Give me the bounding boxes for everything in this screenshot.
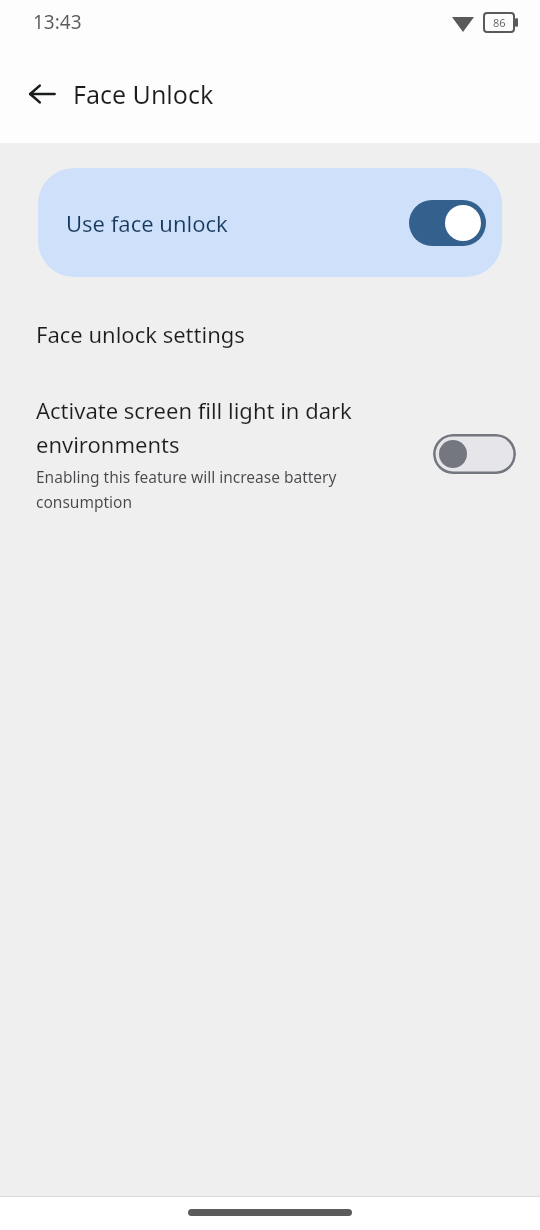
button[interactable]: Back bbox=[18, 70, 66, 118]
staticText: Face Unlock bbox=[73, 77, 214, 111]
button[interactable]: Activate screen fill light in dark envir… bbox=[0, 395, 540, 512]
staticText: 86 bbox=[493, 15, 506, 30]
staticText: Face unlock settings bbox=[36, 319, 245, 349]
staticText: Use face unlock bbox=[66, 208, 409, 238]
button[interactable]: Use face unlock bbox=[38, 168, 502, 277]
staticText: Activate screen fill light in dark envir… bbox=[36, 395, 415, 460]
staticText: 13:43 bbox=[33, 9, 82, 35]
staticText: Enabling this feature will increase batt… bbox=[36, 466, 415, 512]
